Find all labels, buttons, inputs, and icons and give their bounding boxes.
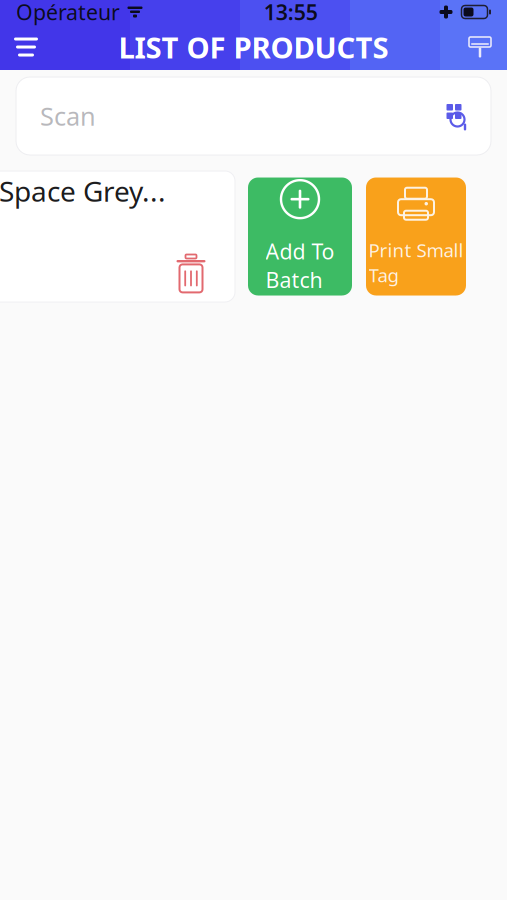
button[interactable]: Add To Batch <box>248 177 352 295</box>
staticText: 13:55 <box>264 0 318 26</box>
button[interactable]: Filter <box>453 24 507 70</box>
staticText: Opérateur <box>16 0 120 26</box>
staticText: Add To Batch <box>265 237 334 294</box>
button[interactable]: Menu <box>0 24 54 70</box>
staticText: Print Small Tag <box>368 238 463 287</box>
staticText: Scan <box>40 99 96 133</box>
staticText: LIST OF PRODUCTS <box>118 27 388 66</box>
button[interactable]: 6s (Space Grey... <box>0 171 235 302</box>
button[interactable]: Scan <box>16 77 491 155</box>
staticText: 6s (Space Grey... <box>0 172 166 209</box>
button[interactable]: Print Small Tag <box>366 177 466 295</box>
